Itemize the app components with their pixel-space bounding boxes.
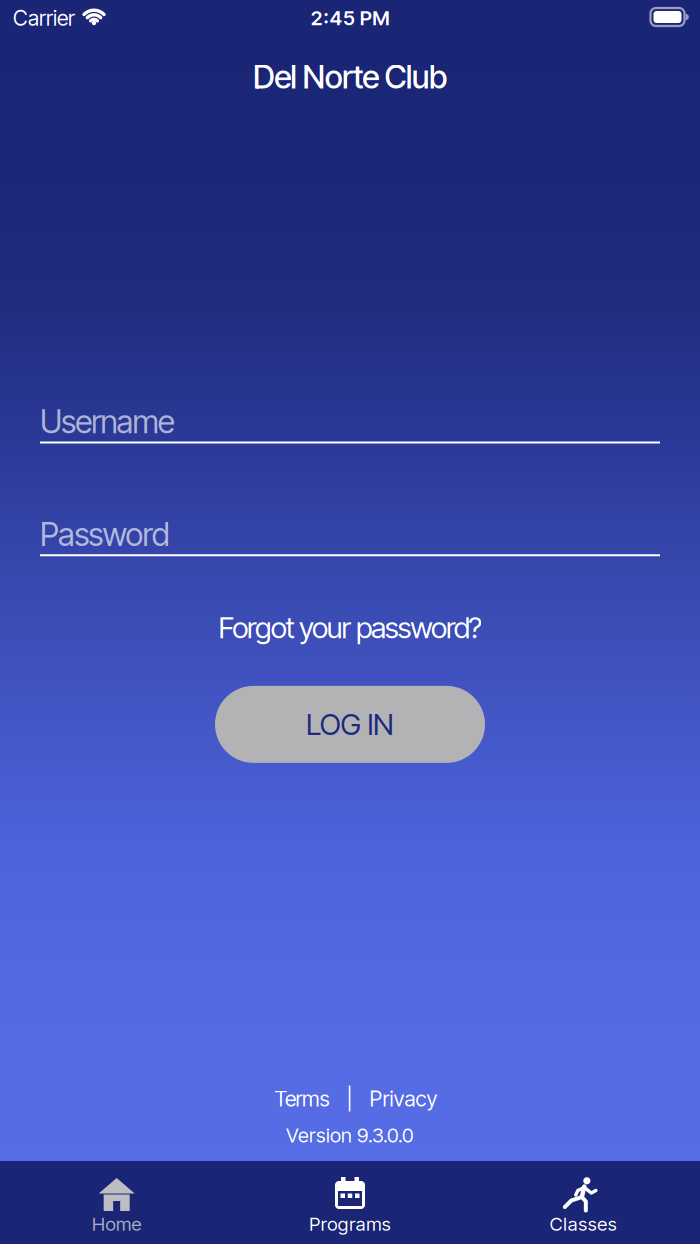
button[interactable]: Terms [274, 1086, 329, 1111]
staticText: Password [40, 515, 170, 553]
button[interactable]: LOG IN [215, 686, 485, 763]
staticText: Version 9.3.0.0 [286, 1123, 414, 1147]
button[interactable]: Privacy [369, 1086, 437, 1111]
staticText: Classes [550, 1213, 617, 1235]
staticText: Privacy [369, 1086, 437, 1111]
button[interactable]: Classes [467, 1161, 700, 1244]
button[interactable]: Forgot your password? [218, 610, 481, 645]
staticText: Programs [309, 1213, 391, 1235]
staticText: Forgot your password? [218, 610, 481, 645]
staticText: | [346, 1086, 352, 1111]
staticText: 2:45 PM [311, 6, 389, 30]
button[interactable]: Programs [233, 1161, 467, 1244]
staticText: Del Norte Club [253, 58, 447, 96]
staticText: LOG IN [306, 707, 394, 742]
button[interactable]: Home [0, 1161, 233, 1244]
staticText: Home [92, 1213, 141, 1235]
staticText: Username [40, 403, 175, 441]
staticText: Terms [274, 1086, 329, 1111]
staticText: Carrier [13, 5, 75, 31]
